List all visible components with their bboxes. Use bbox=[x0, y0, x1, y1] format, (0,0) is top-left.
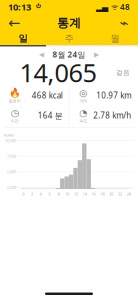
staticText: 10.97 km bbox=[96, 90, 131, 101]
staticText: ◔ bbox=[79, 108, 87, 118]
button[interactable]: 주 bbox=[46, 32, 92, 45]
staticText: 20 bbox=[109, 191, 113, 197]
button[interactable]: Back bbox=[4, 14, 24, 32]
staticText: 164 분 bbox=[38, 110, 63, 121]
staticText: 16 bbox=[92, 191, 96, 197]
staticText: 일 bbox=[18, 33, 27, 44]
staticText: 22 bbox=[118, 191, 122, 197]
button[interactable]: 월 bbox=[92, 32, 138, 45]
staticText: 7,500 bbox=[7, 154, 16, 159]
staticText: 시간 bbox=[11, 118, 19, 123]
button[interactable]: Share bbox=[114, 14, 134, 32]
staticText: 4 bbox=[40, 191, 42, 197]
staticText: 14 bbox=[83, 191, 87, 197]
staticText: ▂▄ ᯤ 48 bbox=[96, 2, 130, 12]
staticText: 2.78 km/h bbox=[93, 110, 131, 121]
staticText: ▶ bbox=[94, 51, 99, 58]
staticText: 🔥 bbox=[9, 88, 21, 98]
staticText: 14,065 bbox=[3, 132, 14, 138]
staticText: 24 bbox=[127, 191, 131, 197]
staticText: 월 bbox=[110, 33, 119, 44]
staticText: 6 bbox=[49, 191, 51, 197]
staticText: 468 kcal bbox=[32, 90, 63, 101]
staticText: 10:13 bbox=[8, 1, 31, 13]
staticText: ◀ bbox=[39, 51, 44, 58]
staticText: ◷ bbox=[11, 108, 19, 118]
staticText: 8 bbox=[57, 191, 59, 197]
staticText: 14,065 bbox=[19, 56, 96, 89]
staticText: ← bbox=[8, 15, 20, 31]
staticText: 18 bbox=[100, 191, 104, 197]
staticText: 거리 bbox=[79, 98, 87, 103]
staticText: ⏻ bbox=[31, 2, 41, 12]
staticText: 주 bbox=[64, 33, 73, 44]
staticText: 12 bbox=[74, 191, 78, 197]
staticText: 2 bbox=[31, 191, 33, 197]
staticText: 10 bbox=[65, 191, 69, 197]
button[interactable]: Previous day bbox=[36, 49, 46, 59]
staticText: ⌁ bbox=[119, 15, 128, 31]
staticText: 5,000 bbox=[7, 169, 16, 174]
button[interactable]: Next day bbox=[91, 49, 101, 59]
staticText: 걸음 bbox=[116, 68, 130, 77]
staticText: 속도 bbox=[79, 118, 87, 123]
staticText: 10,000 bbox=[5, 138, 16, 143]
staticText: 8월 24일 bbox=[52, 49, 85, 60]
staticText: 통계 bbox=[57, 16, 81, 30]
staticText: 0 bbox=[22, 191, 24, 197]
staticText: ◎ bbox=[79, 88, 87, 98]
staticText: 칼로리 bbox=[9, 98, 21, 103]
staticText: 2,500 bbox=[7, 185, 16, 190]
button[interactable]: 일 bbox=[0, 32, 46, 45]
